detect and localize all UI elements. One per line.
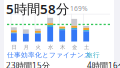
staticText: 木 — [60, 44, 65, 51]
staticText: 土 — [84, 44, 89, 51]
staticText: 5時間58分 — [6, 0, 69, 18]
staticText: 日 — [12, 44, 17, 51]
staticText: 仕事効率化とファイナンス — [7, 51, 91, 59]
staticText: 水 — [48, 44, 53, 51]
staticText: 169% — [70, 4, 88, 13]
staticText: 火 — [36, 44, 41, 51]
staticText: 金 — [72, 44, 77, 51]
staticText: 23時間15分 — [6, 60, 50, 68]
staticText: 4時間16分 — [87, 60, 120, 68]
staticText: 旅行 — [86, 51, 100, 59]
staticText: 月 — [24, 44, 29, 51]
